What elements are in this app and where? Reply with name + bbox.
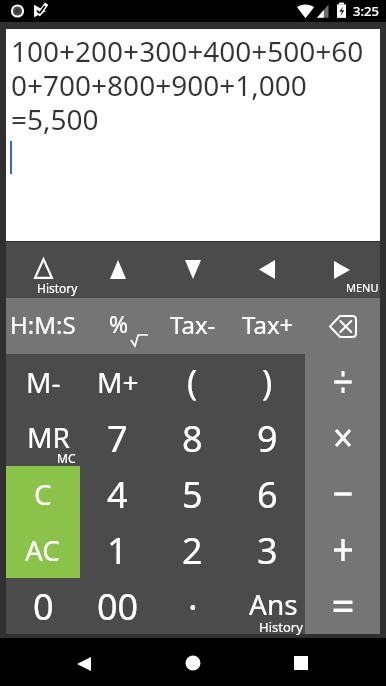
staticText: MC (57, 450, 76, 466)
staticText: 8 (182, 414, 203, 463)
staticText: 1 (107, 526, 128, 575)
button[interactable]: ( (155, 354, 230, 410)
staticText: MR (27, 418, 70, 456)
staticText: 7 (107, 414, 128, 463)
staticText: C (34, 475, 52, 513)
staticText: Tax+ (242, 308, 294, 341)
staticText: 100+200+300+400+500+60 0+700+800+900+1,0… (11, 32, 364, 138)
staticText: 00 (97, 582, 139, 631)
button[interactable]: Ans (230, 578, 305, 634)
staticText: 0 (33, 582, 54, 631)
button[interactable]: 6 (230, 466, 305, 522)
staticText: H:M:S (10, 308, 76, 341)
staticText: 3:25 (353, 2, 379, 20)
button[interactable]: 7 (80, 410, 155, 466)
staticText: · (188, 582, 198, 631)
button[interactable]: times (305, 410, 380, 466)
staticText: Ans (249, 585, 298, 623)
staticText: ( (187, 359, 198, 405)
staticText: 4 (107, 470, 128, 519)
button[interactable]: C (6, 466, 80, 522)
button[interactable]: Menu (305, 242, 380, 298)
button[interactable]: 4 (80, 466, 155, 522)
button[interactable]: Scroll up (81, 242, 156, 298)
button[interactable]: 2 (155, 522, 230, 578)
button[interactable]: divide (305, 354, 380, 410)
staticText: AC (25, 531, 61, 569)
button[interactable]: 00 (80, 578, 155, 634)
button[interactable]: % (80, 298, 155, 354)
button[interactable]: 1 (80, 522, 155, 578)
button[interactable]: equals (305, 578, 380, 634)
button[interactable]: MR (6, 410, 80, 466)
button[interactable]: ) (230, 354, 305, 410)
button[interactable]: Backspace (305, 298, 380, 354)
staticText: 2 (182, 526, 203, 575)
button[interactable]: 100+200+300+400+500+60 0+700+800+900+1,0… (6, 29, 380, 241)
button[interactable]: 9 (230, 410, 305, 466)
button[interactable]: History (6, 242, 81, 298)
staticText: MENU (346, 280, 379, 295)
button[interactable]: Move left (230, 242, 305, 298)
button[interactable]: M- (6, 354, 80, 410)
staticText: 6 (257, 470, 278, 519)
button[interactable]: 0 (6, 578, 80, 634)
button[interactable]: Tax- (155, 298, 230, 354)
button[interactable]: Scroll down (156, 242, 231, 298)
button[interactable]: · (155, 578, 230, 634)
staticText: % (109, 308, 129, 339)
button[interactable]: M+ (80, 354, 155, 410)
button[interactable]: 5 (155, 466, 230, 522)
staticText: 5 (182, 470, 203, 519)
staticText: Tax- (170, 308, 216, 341)
button[interactable]: AC (6, 522, 80, 578)
staticText: History (37, 280, 78, 296)
staticText: ) (262, 359, 273, 405)
button[interactable]: H:M:S (6, 298, 80, 354)
button[interactable]: 3 (230, 522, 305, 578)
staticText: 3 (257, 526, 278, 575)
button[interactable]: plus (305, 522, 380, 578)
button[interactable]: Tax+ (230, 298, 305, 354)
staticText: 9 (257, 414, 278, 463)
staticText: M+ (97, 363, 139, 401)
staticText: History (259, 618, 319, 636)
button[interactable]: 8 (155, 410, 230, 466)
button[interactable]: minus (305, 466, 380, 522)
staticText: M- (26, 363, 61, 401)
